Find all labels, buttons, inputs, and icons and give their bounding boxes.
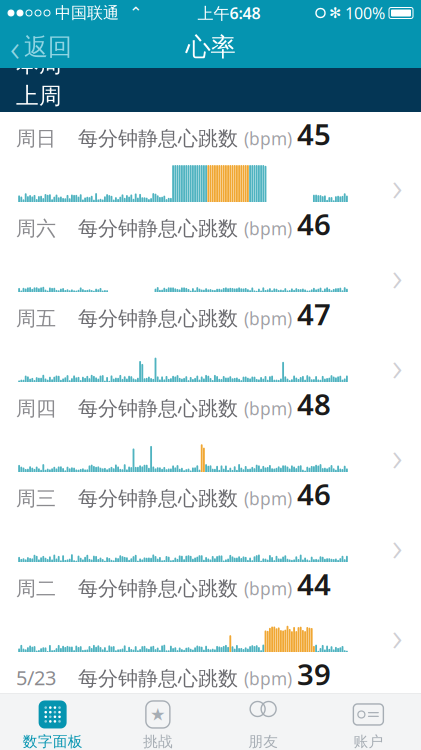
staticText: 45 xyxy=(297,114,331,153)
staticText: 周二 xyxy=(16,576,56,601)
staticText: 周五 xyxy=(16,306,56,331)
staticText: 周三 xyxy=(16,486,56,511)
staticText: (bpm) xyxy=(244,217,297,240)
staticText: 上午6:48 xyxy=(197,2,260,24)
staticText: › xyxy=(392,429,403,482)
staticText: (bpm) xyxy=(244,487,297,510)
button[interactable]: ★ xyxy=(105,693,210,750)
staticText: (bpm) xyxy=(244,577,297,600)
staticText: 账户 xyxy=(353,732,383,750)
staticText: 每分钟静息心跳数 xyxy=(78,666,244,691)
staticText: 周日 xyxy=(16,126,56,151)
staticText: 每分钟静息心跳数 xyxy=(78,216,244,241)
staticText: › xyxy=(392,339,403,392)
button[interactable]: 周四 xyxy=(0,382,421,472)
button[interactable]: 周日 xyxy=(0,112,421,202)
staticText: 每分钟静息心跳数 xyxy=(78,126,244,151)
staticText: ★ xyxy=(150,705,166,724)
staticText: 周六 xyxy=(16,216,56,241)
button[interactable]: 5/23 xyxy=(0,652,421,742)
button[interactable]: 账户 xyxy=(316,693,421,750)
button[interactable]: 周二 xyxy=(0,562,421,652)
staticText: 46 xyxy=(297,474,331,513)
button[interactable]: 周五 xyxy=(0,292,421,382)
staticText: 心率 xyxy=(185,31,235,62)
staticText: 5/23 xyxy=(16,664,56,691)
staticText: 上周 xyxy=(16,82,62,110)
staticText: (bpm) xyxy=(244,307,297,330)
staticText: 每分钟静息心跳数 xyxy=(78,576,244,601)
staticText: (bpm) xyxy=(244,127,297,150)
staticText: 每分钟静息心跳数 xyxy=(78,396,244,421)
staticText: 返回 xyxy=(24,32,72,62)
staticText: 39 xyxy=(297,654,331,693)
button[interactable]: 数字面板 xyxy=(0,693,105,750)
staticText: 挑战 xyxy=(143,732,173,750)
staticText: › xyxy=(392,159,403,212)
staticText: 46 xyxy=(297,204,331,243)
staticText: 朋友 xyxy=(248,732,278,750)
staticText: 数字面板 xyxy=(23,732,83,750)
staticText: 周四 xyxy=(16,396,56,421)
staticText: › xyxy=(392,519,403,572)
staticText: 每分钟静息心跳数 xyxy=(78,306,244,331)
staticText: ⌃ xyxy=(129,4,142,22)
staticText: 每分钟静息心跳数 xyxy=(78,486,244,511)
staticText: ‹ xyxy=(10,22,20,72)
staticText: (bpm) xyxy=(244,397,297,420)
staticText: 47 xyxy=(297,294,331,333)
staticText: ✻ xyxy=(329,5,341,21)
staticText: › xyxy=(392,609,403,662)
staticText: › xyxy=(392,249,403,302)
staticText: (bpm) xyxy=(244,667,297,690)
button[interactable]: 周六 xyxy=(0,202,421,292)
button[interactable]: ‹ xyxy=(0,18,72,76)
staticText: 本周 xyxy=(16,50,62,78)
button[interactable]: 朋友 xyxy=(210,693,316,750)
staticText: 中国联通 xyxy=(50,3,129,23)
staticText: 100% xyxy=(345,2,385,24)
staticText: 44 xyxy=(297,564,331,603)
staticText: 48 xyxy=(297,384,331,423)
button[interactable]: 周三 xyxy=(0,472,421,562)
